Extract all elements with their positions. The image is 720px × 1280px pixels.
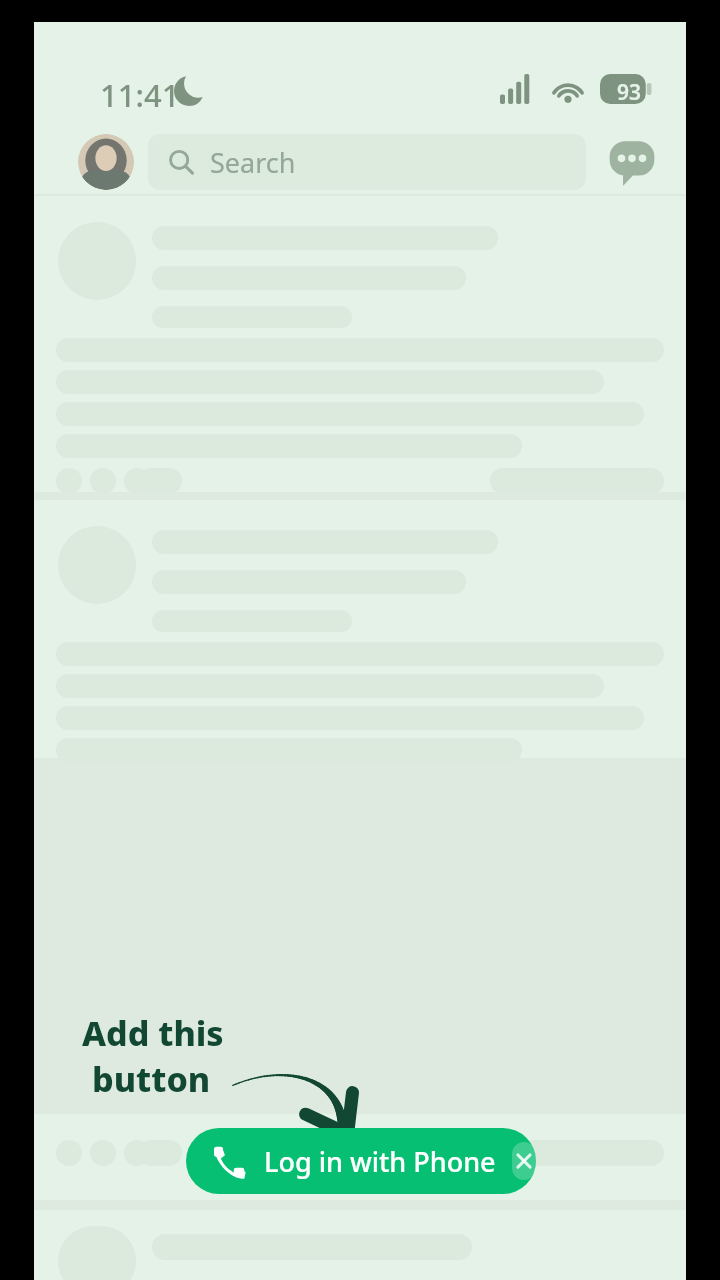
- button[interactable]: Log in with Phone: [186, 1128, 536, 1194]
- staticText: Log in with Phone: [264, 1143, 496, 1180]
- button[interactable]: Dismiss: [512, 1142, 536, 1180]
- button[interactable]: Search: [148, 134, 586, 190]
- button[interactable]: Messages: [606, 136, 658, 188]
- staticText: button: [92, 1056, 211, 1102]
- button[interactable]: Profile: [78, 134, 134, 190]
- staticText: Add this: [82, 1010, 224, 1056]
- staticText: Search: [210, 144, 296, 181]
- staticText: 93: [606, 78, 652, 107]
- staticText: 11:41: [100, 74, 180, 116]
